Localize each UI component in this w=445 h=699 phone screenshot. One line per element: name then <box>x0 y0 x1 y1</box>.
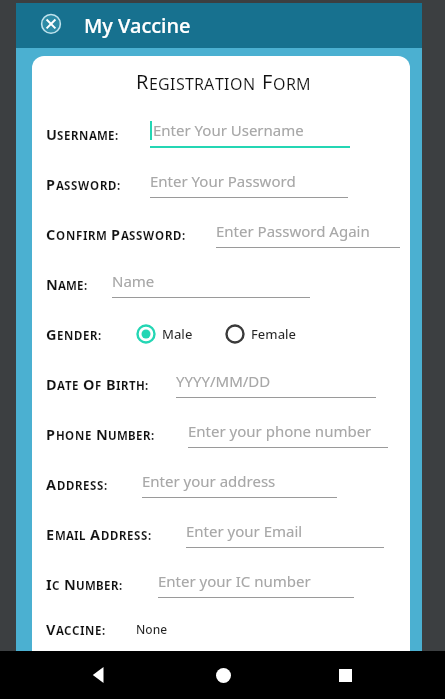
staticText: T <box>215 73 224 95</box>
button[interactable]: E <box>46 509 400 559</box>
staticText: I <box>170 73 176 95</box>
staticText: : <box>98 328 102 344</box>
staticText: O <box>273 73 286 95</box>
staticText: R <box>121 378 129 394</box>
staticText: C <box>72 623 80 639</box>
staticText: R <box>165 228 173 244</box>
staticText: S <box>134 528 141 544</box>
staticText: A <box>56 623 64 639</box>
button[interactable]: V <box>46 609 400 649</box>
staticText: E <box>72 378 79 394</box>
staticText: E <box>136 428 143 444</box>
staticText: Enter your IC number <box>158 571 311 591</box>
staticText: M <box>55 528 66 544</box>
staticText: W <box>78 178 90 194</box>
button[interactable]: Male <box>136 324 193 344</box>
staticText: A <box>121 228 129 244</box>
staticText: I <box>74 528 79 544</box>
staticText: R <box>136 68 149 95</box>
button[interactable]: P <box>46 159 400 209</box>
staticText: S <box>71 178 78 194</box>
staticText: A <box>56 178 64 194</box>
staticText: G <box>158 73 170 95</box>
button[interactable]: U <box>46 109 400 159</box>
staticText: None <box>136 621 168 637</box>
staticText: D <box>101 528 110 544</box>
staticText: V <box>46 619 56 639</box>
staticText: T <box>65 378 72 394</box>
staticText: : <box>151 428 155 444</box>
staticText: C <box>64 623 72 639</box>
button[interactable]: C <box>46 209 400 259</box>
staticText: P <box>111 224 121 244</box>
staticText: A <box>57 378 65 394</box>
staticText: Male <box>162 325 193 343</box>
staticText: D <box>110 528 119 544</box>
staticText: D <box>57 478 66 494</box>
staticText: R <box>286 73 296 95</box>
staticText: N <box>243 73 256 95</box>
staticText: F <box>95 378 102 394</box>
staticText: E <box>127 528 134 544</box>
button[interactable]: D <box>46 359 400 409</box>
staticText: H <box>136 378 145 394</box>
staticText: R <box>111 578 119 594</box>
staticText: Enter your address <box>142 471 276 491</box>
button[interactable]: Back <box>78 653 122 697</box>
staticText: E <box>83 328 90 344</box>
staticText: E <box>83 478 90 494</box>
staticText: O <box>56 228 66 244</box>
button[interactable]: I <box>46 559 400 609</box>
staticText: M <box>97 128 108 144</box>
button[interactable]: Female <box>225 324 297 344</box>
staticText: Enter Password Again <box>216 221 370 241</box>
staticText: : <box>84 278 88 294</box>
staticText: E <box>77 278 84 294</box>
staticText: R <box>100 178 108 194</box>
staticText: A <box>90 524 101 544</box>
staticText: N <box>66 228 76 244</box>
staticText: B <box>128 428 136 444</box>
staticText: E <box>64 128 71 144</box>
staticText: B <box>106 374 116 394</box>
staticText: F <box>262 68 273 95</box>
staticText: I <box>46 574 52 594</box>
staticText: : <box>102 623 106 639</box>
staticText: : <box>148 528 152 544</box>
staticText: N <box>79 128 89 144</box>
button[interactable]: N <box>46 259 400 309</box>
staticText: R <box>194 73 204 95</box>
staticText: O <box>65 428 75 444</box>
staticText: I <box>116 378 121 394</box>
staticText: A <box>204 73 215 95</box>
staticText: N <box>85 623 95 639</box>
button[interactable]: Home <box>201 653 245 697</box>
staticText: C <box>52 578 60 594</box>
staticText: U <box>76 578 85 594</box>
staticText: N <box>75 428 85 444</box>
staticText: Enter Your Username <box>153 120 304 140</box>
staticText: E <box>85 428 92 444</box>
staticText: M <box>117 428 128 444</box>
staticText: : <box>182 228 186 244</box>
button[interactable]: P <box>46 409 400 459</box>
staticText: I <box>83 228 88 244</box>
staticText: W <box>143 228 155 244</box>
staticText: L <box>79 528 86 544</box>
button[interactable] <box>42 676 400 696</box>
staticText: I <box>224 73 230 95</box>
staticText: I <box>80 623 85 639</box>
button[interactable]: Recent apps <box>323 653 367 697</box>
staticText: N <box>64 574 76 594</box>
staticText: Enter Your Password <box>150 171 296 191</box>
staticText: E <box>57 328 64 344</box>
staticText: S <box>97 478 104 494</box>
staticText: E <box>46 524 55 544</box>
staticText: : <box>145 378 149 394</box>
staticText: M <box>66 278 77 294</box>
button[interactable]: A <box>46 459 400 509</box>
staticText: E <box>149 73 158 95</box>
